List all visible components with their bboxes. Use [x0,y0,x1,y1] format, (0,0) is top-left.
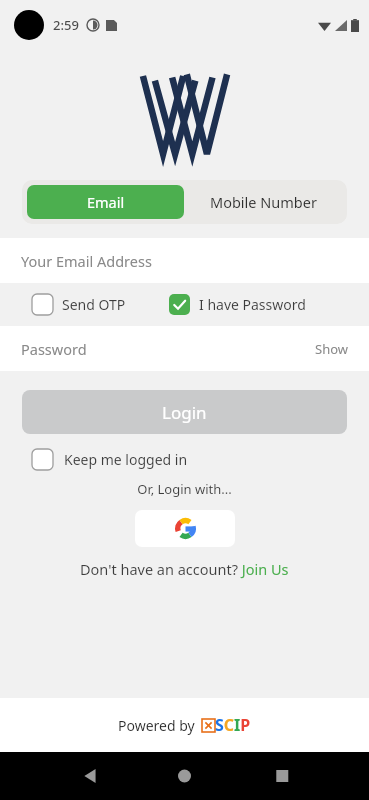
staticText: Email [87,192,125,212]
button[interactable]: Password [0,326,369,371]
staticText: Don't have an account? Join Us [80,559,289,579]
button[interactable]: Show [315,340,348,358]
staticText: Password [21,339,87,359]
button[interactable]: Mobile Number [184,185,342,219]
staticText: Your Email Address [21,251,152,271]
button[interactable]: Your Email Address [0,238,369,283]
staticText: Mobile Number [210,192,317,212]
button[interactable]: Don't have an account? Join Us [80,559,289,579]
staticText: Send OTP [62,295,126,314]
button[interactable]: Email [27,185,184,219]
button[interactable]: Send OTP [32,294,126,315]
staticText: Or, Login with... [0,480,369,498]
button[interactable]: I have Password [169,294,306,315]
staticText: Powered by [118,716,199,735]
button[interactable]: Keep me logged in [32,449,188,470]
staticText: SCIP [215,714,251,736]
staticText: Login [162,401,207,424]
staticText: 2:59 [53,16,79,34]
staticText: I have Password [199,295,306,314]
staticText: Keep me logged in [64,450,188,469]
button[interactable]: Login [22,390,347,434]
button[interactable]: Sign in with Google [135,510,235,547]
